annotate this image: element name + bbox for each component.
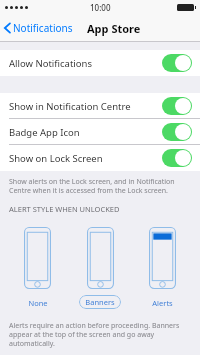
- button[interactable]: Toggle: [162, 149, 192, 167]
- button[interactable]: Show on Lock Screen: [0, 145, 200, 171]
- button[interactable]: Toggle: [162, 54, 192, 72]
- staticText: Notifications: [13, 21, 73, 35]
- button[interactable]: Badge App Icon: [0, 119, 200, 145]
- staticText: Show alerts on the Lock screen, and in N…: [9, 177, 188, 195]
- button[interactable]: Banners: [75, 225, 125, 311]
- staticText: Badge App Icon: [9, 126, 80, 139]
- staticText: Show on Lock Screen: [9, 152, 103, 165]
- staticText: 10:00: [90, 2, 111, 13]
- staticText: Banners: [85, 297, 115, 307]
- staticText: ALERT STYLE WHEN UNLOCKED: [9, 204, 120, 214]
- button[interactable]: Allow Notifications: [0, 50, 200, 76]
- button[interactable]: Notifications: [0, 17, 77, 39]
- staticText: None: [28, 298, 48, 308]
- button[interactable]: None: [20, 225, 55, 313]
- button[interactable]: Toggle: [162, 97, 192, 115]
- staticText: App Store: [87, 21, 141, 36]
- staticText: Alerts require an action before proceedi…: [9, 321, 190, 348]
- staticText: Allow Notifications: [9, 57, 92, 70]
- button[interactable]: Alerts: [145, 225, 180, 313]
- staticText: Alerts: [152, 298, 173, 308]
- button[interactable]: Toggle: [162, 123, 192, 141]
- button[interactable]: Show in Notification Centre: [0, 93, 200, 119]
- staticText: Show in Notification Centre: [9, 100, 131, 113]
